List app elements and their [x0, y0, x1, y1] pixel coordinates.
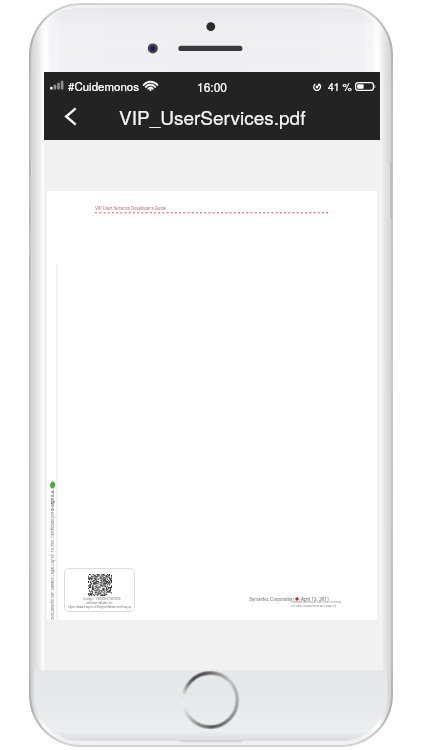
staticText: 16:00	[197, 78, 228, 95]
staticText: VIP User Services Developer's Guide	[95, 205, 167, 211]
staticText: Symantec 350 Ellis St, Mtn View, CA 9404…	[291, 600, 342, 607]
staticText: April 13, 2011	[301, 596, 330, 603]
staticText: VIP_UserServices.pdf	[119, 103, 306, 130]
staticText: Symantec Corporation	[249, 596, 294, 602]
staticText: #Cuidemonos	[68, 78, 139, 94]
staticText: verificar validez en:	[86, 600, 114, 605]
staticText: Documento con Validez Legal Ley N° 19.79…	[48, 488, 54, 619]
staticText: Código: 19830507437859	[83, 596, 121, 601]
staticText: https://www.esigner.cl/EsignerValidar/ve…	[68, 605, 132, 609]
staticText: 41 %	[328, 79, 352, 94]
button[interactable]: Back	[48, 96, 92, 136]
